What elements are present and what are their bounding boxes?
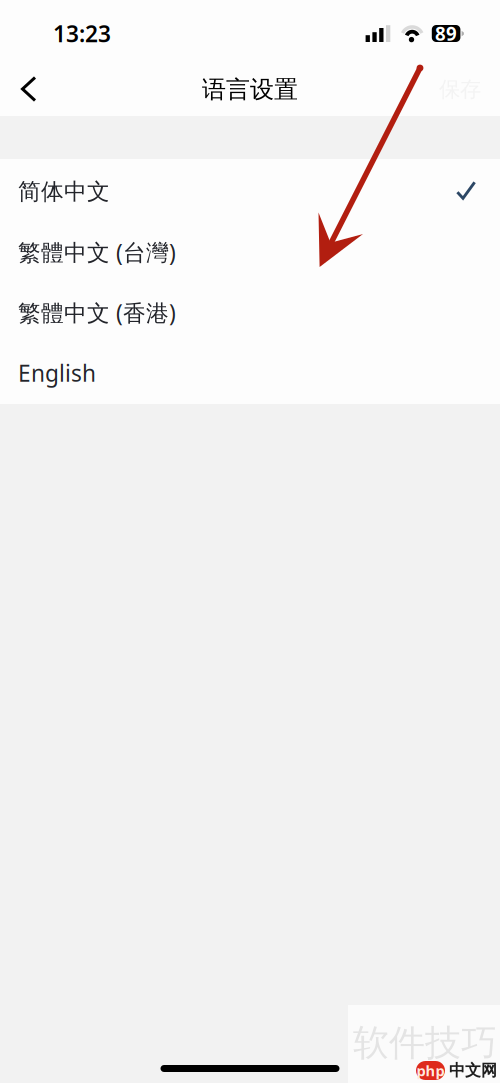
button[interactable]: 繁體中文 (香港): [0, 280, 500, 340]
staticText: 语言设置: [202, 75, 298, 104]
staticText: 中文网: [449, 1061, 497, 1080]
staticText: 13:23: [53, 18, 111, 48]
button[interactable]: Back: [7, 67, 51, 111]
staticText: 89: [435, 21, 457, 46]
staticText: 软件技巧: [353, 1021, 497, 1065]
staticText: 繁體中文 (香港): [18, 297, 176, 327]
button[interactable]: 简体中文: [0, 159, 500, 219]
staticText: 保存: [439, 76, 481, 103]
staticText: English: [18, 358, 96, 388]
button[interactable]: English: [0, 340, 500, 401]
staticText: 繁體中文 (台灣): [18, 237, 176, 267]
staticText: php: [416, 1061, 444, 1080]
staticText: 简体中文: [18, 178, 110, 206]
button[interactable]: 繁體中文 (台灣): [0, 219, 500, 280]
